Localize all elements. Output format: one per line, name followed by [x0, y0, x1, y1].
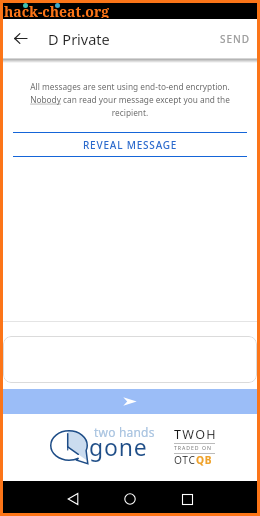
staticText: D Private — [48, 29, 110, 49]
staticText: SEND — [220, 32, 251, 46]
staticText: All messages are sent using end-to-end e… — [27, 81, 233, 119]
button[interactable]: Home — [115, 484, 145, 514]
staticText: gone — [89, 431, 148, 462]
staticText: REVEAL MESSAGE — [83, 138, 178, 152]
staticText: TWOH — [174, 426, 217, 443]
button[interactable]: Message input — [3, 336, 257, 383]
staticText: TRADED ON — [174, 444, 212, 451]
button[interactable]: SEND — [209, 19, 257, 58]
staticText: hack-cheat.org — [4, 2, 110, 18]
button[interactable]: REVEAL MESSAGE — [13, 132, 247, 157]
button[interactable]: Send — [3, 389, 257, 414]
staticText: two hands — [94, 424, 155, 440]
button[interactable]: Back — [3, 19, 37, 58]
button[interactable]: Recent apps — [172, 484, 202, 514]
staticText: OTC — [174, 453, 196, 467]
button[interactable]: Back — [58, 484, 88, 514]
staticText: QB — [196, 453, 213, 467]
